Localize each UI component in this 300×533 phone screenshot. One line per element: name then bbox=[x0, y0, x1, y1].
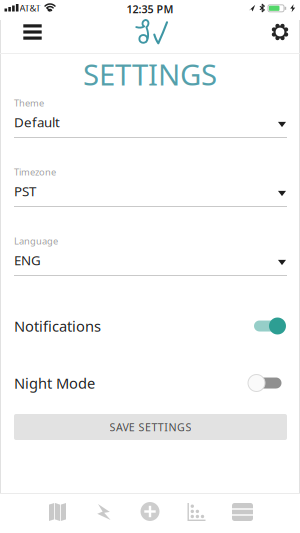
staticText: SAVE SETTINGS bbox=[110, 420, 191, 434]
staticText: 12:35 PM bbox=[126, 2, 173, 16]
staticText: AT&T bbox=[19, 2, 40, 14]
staticText: PST bbox=[14, 182, 36, 200]
button[interactable]: Lists bbox=[222, 495, 262, 529]
button[interactable]: PST bbox=[14, 176, 286, 206]
staticText: Night Mode bbox=[14, 373, 95, 393]
button[interactable]: Night Mode bbox=[248, 371, 283, 394]
button[interactable]: Notifications bbox=[251, 314, 286, 337]
staticText: Timezone bbox=[14, 166, 56, 178]
staticText: SETTINGS bbox=[83, 54, 217, 93]
button[interactable]: ENG bbox=[14, 245, 286, 275]
button[interactable]: Map bbox=[37, 495, 77, 529]
button[interactable]: Menu bbox=[15, 17, 49, 47]
staticText: ENG bbox=[14, 251, 41, 269]
button[interactable]: SAVE SETTINGS bbox=[14, 414, 287, 440]
button[interactable]: Stats bbox=[176, 495, 216, 529]
button[interactable]: Add bbox=[130, 494, 170, 528]
staticText: Notifications bbox=[14, 316, 101, 336]
staticText: Language bbox=[14, 235, 58, 247]
button[interactable]: Activity bbox=[84, 495, 124, 529]
staticText: Theme bbox=[14, 97, 44, 109]
staticText: Default bbox=[14, 113, 60, 131]
button[interactable]: Default bbox=[14, 107, 286, 137]
button[interactable]: Settings bbox=[265, 17, 295, 47]
